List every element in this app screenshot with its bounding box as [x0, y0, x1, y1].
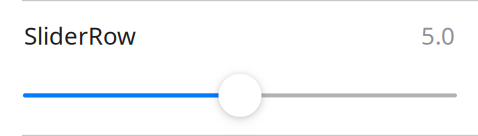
button[interactable]: SliderRow, 5.0: [23, 74, 457, 117]
staticText: SliderRow: [24, 19, 136, 51]
staticText: 5.0: [421, 19, 455, 51]
